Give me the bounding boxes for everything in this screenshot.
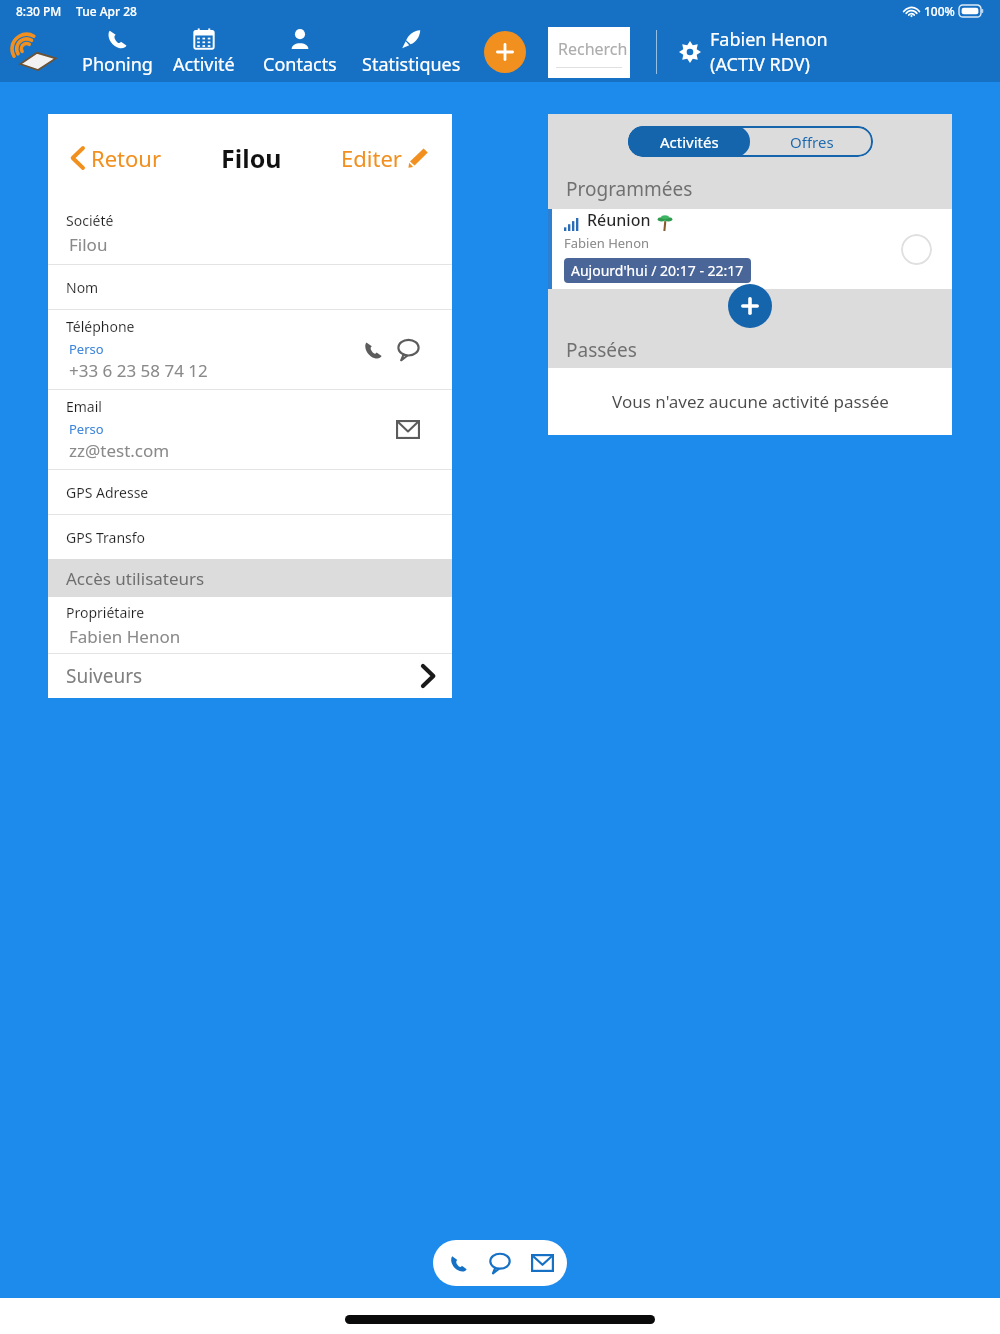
staticText: Phoning <box>82 52 153 77</box>
button[interactable]: Propriétaire <box>48 597 452 653</box>
button[interactable]: Editer <box>335 137 434 179</box>
staticText: GPS Adresse <box>66 483 149 502</box>
button[interactable]: Envoyer un email <box>525 1246 559 1280</box>
staticText: Aujourd'hui / 20:17 - 22:17 <box>571 261 744 280</box>
staticText: Nom <box>66 278 99 297</box>
button[interactable]: Contacts <box>248 22 352 82</box>
button[interactable]: Nouvelle activité <box>728 284 772 328</box>
button[interactable]: Société <box>48 202 452 264</box>
staticText: 8:30 PM <box>16 3 62 19</box>
staticText: Activité <box>173 52 235 77</box>
staticText: zz@test.com <box>69 439 170 462</box>
button[interactable]: ACTIV RDV logo <box>8 29 66 75</box>
staticText: Fabien Henon <box>69 625 181 648</box>
button[interactable]: Nom <box>48 265 452 309</box>
staticText: 100% <box>924 3 955 19</box>
staticText: Filou <box>221 141 282 175</box>
button[interactable]: Téléphone <box>48 310 452 389</box>
staticText: Propriétaire <box>66 603 145 622</box>
staticText: Téléphone <box>66 317 135 336</box>
staticText: Perso <box>69 420 104 438</box>
staticText: Contacts <box>263 52 337 77</box>
staticText: Offres <box>790 132 834 152</box>
button[interactable]: Appeler <box>441 1246 475 1280</box>
button[interactable]: GPS Transfo <box>48 515 452 559</box>
button[interactable]: Phoning <box>74 22 160 82</box>
button[interactable]: Activité <box>160 22 248 82</box>
staticText: Tue Apr 28 <box>76 3 137 19</box>
button[interactable]: Retour <box>66 137 168 179</box>
staticText: Statistiques <box>362 52 461 77</box>
button[interactable]: Suiveurs <box>48 654 452 698</box>
staticText: Activités <box>660 132 719 152</box>
staticText: Perso <box>69 340 104 358</box>
staticText: Fabien Henon <box>710 27 828 52</box>
staticText: Retour <box>91 143 162 173</box>
button[interactable]: Email <box>48 390 452 469</box>
staticText: Réunion <box>587 209 651 231</box>
button[interactable]: Envoyer un SMS <box>483 1246 517 1280</box>
staticText: Passées <box>566 337 637 363</box>
button[interactable]: Accès utilisateurs <box>48 559 452 597</box>
button[interactable]: Fabien Henon <box>679 23 828 81</box>
button[interactable]: Offres <box>750 126 873 157</box>
button[interactable]: Ajouter <box>484 31 526 73</box>
button[interactable]: Statistiques <box>352 22 470 82</box>
staticText: Recherch <box>558 38 628 60</box>
staticText: Accès utilisateurs <box>66 567 205 590</box>
staticText: Vous n'avez aucune activité passée <box>612 390 889 413</box>
staticText: (ACTIV RDV) <box>710 52 810 77</box>
staticText: Société <box>66 211 114 230</box>
button[interactable]: Activités <box>628 126 750 157</box>
button[interactable]: Recherch <box>548 27 630 78</box>
staticText: Editer <box>341 143 402 173</box>
staticText: Programmées <box>566 176 693 202</box>
button[interactable]: Marquer comme terminé <box>901 234 932 265</box>
staticText: Suiveurs <box>66 663 143 689</box>
button[interactable]: GPS Adresse <box>48 470 452 514</box>
button[interactable]: Réunion <box>548 209 952 289</box>
staticText: GPS Transfo <box>66 528 146 547</box>
staticText: Fabien Henon <box>564 234 650 252</box>
staticText: Filou <box>69 233 108 256</box>
staticText: +33 6 23 58 74 12 <box>69 359 208 382</box>
staticText: Email <box>66 397 102 416</box>
